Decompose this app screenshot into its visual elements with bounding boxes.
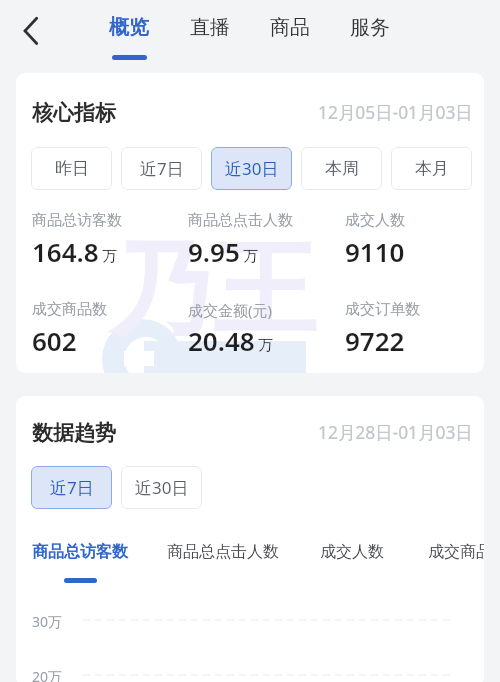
staticText: 12月28日-01月03日 (318, 420, 473, 444)
button[interactable]: Back (9, 8, 53, 52)
staticText: 近7日 (140, 157, 184, 180)
button[interactable]: 本周 (301, 147, 382, 190)
staticText: 商品 (270, 15, 310, 40)
staticText: 数据趋势 (32, 420, 116, 446)
staticText: 昨日 (55, 158, 89, 179)
staticText: 成交商品数 (32, 300, 107, 319)
button[interactable]: 成交人数 (320, 542, 384, 562)
staticText: 服务 (350, 15, 390, 40)
staticText: 商品总点击人数 (188, 211, 293, 230)
staticText: 本周 (325, 158, 359, 179)
staticText: 12月05日-01月03日 (318, 100, 473, 124)
staticText: 602 (32, 323, 77, 358)
staticText: 成交订单数 (345, 300, 420, 319)
button[interactable]: 商品 (262, 8, 318, 60)
staticText: 9110 (345, 234, 405, 269)
staticText: 直播 (190, 15, 230, 40)
staticText: 商品总访客数 (32, 542, 128, 562)
staticText: 乃王 (110, 226, 316, 356)
button[interactable]: 直播 (182, 8, 238, 60)
staticText: 近30日 (225, 157, 279, 180)
button[interactable]: 近7日 (31, 466, 112, 509)
staticText: 成交商品数 (428, 542, 484, 562)
button[interactable]: 本月 (391, 147, 472, 190)
staticText: 核心指标 (32, 100, 116, 126)
button[interactable]: 成交商品数 (428, 542, 484, 562)
staticText: 近30日 (135, 476, 189, 499)
staticText: 20万 (32, 667, 63, 682)
staticText: 成交人数 (320, 542, 384, 562)
staticText: 成交金额(元) (188, 300, 273, 320)
button[interactable]: 近30日 (121, 466, 202, 509)
staticText: 成交人数 (345, 211, 405, 230)
staticText: 164.8 (32, 234, 99, 269)
button[interactable]: 服务 (342, 8, 398, 60)
staticText: 概览 (109, 15, 149, 40)
button[interactable]: 近30日 (211, 147, 292, 190)
button[interactable]: 概览 (101, 8, 157, 60)
button[interactable]: 近7日 (121, 147, 202, 190)
staticText: 本月 (415, 158, 449, 179)
button[interactable]: 商品总访客数 (32, 542, 128, 583)
staticText: 万 (102, 247, 117, 266)
button[interactable]: 昨日 (31, 147, 112, 190)
staticText: 30万 (32, 612, 63, 631)
staticText: 商品总访客数 (32, 211, 122, 230)
staticText: 万 (258, 336, 273, 355)
staticText: 20.48 (188, 323, 255, 358)
staticText: 商品总点击人数 (167, 542, 279, 562)
staticText: 万 (243, 247, 258, 266)
staticText: 近7日 (50, 476, 94, 499)
staticText: 9722 (345, 323, 405, 358)
button[interactable]: 商品总点击人数 (167, 542, 279, 562)
staticText: 9.95 (188, 234, 240, 269)
